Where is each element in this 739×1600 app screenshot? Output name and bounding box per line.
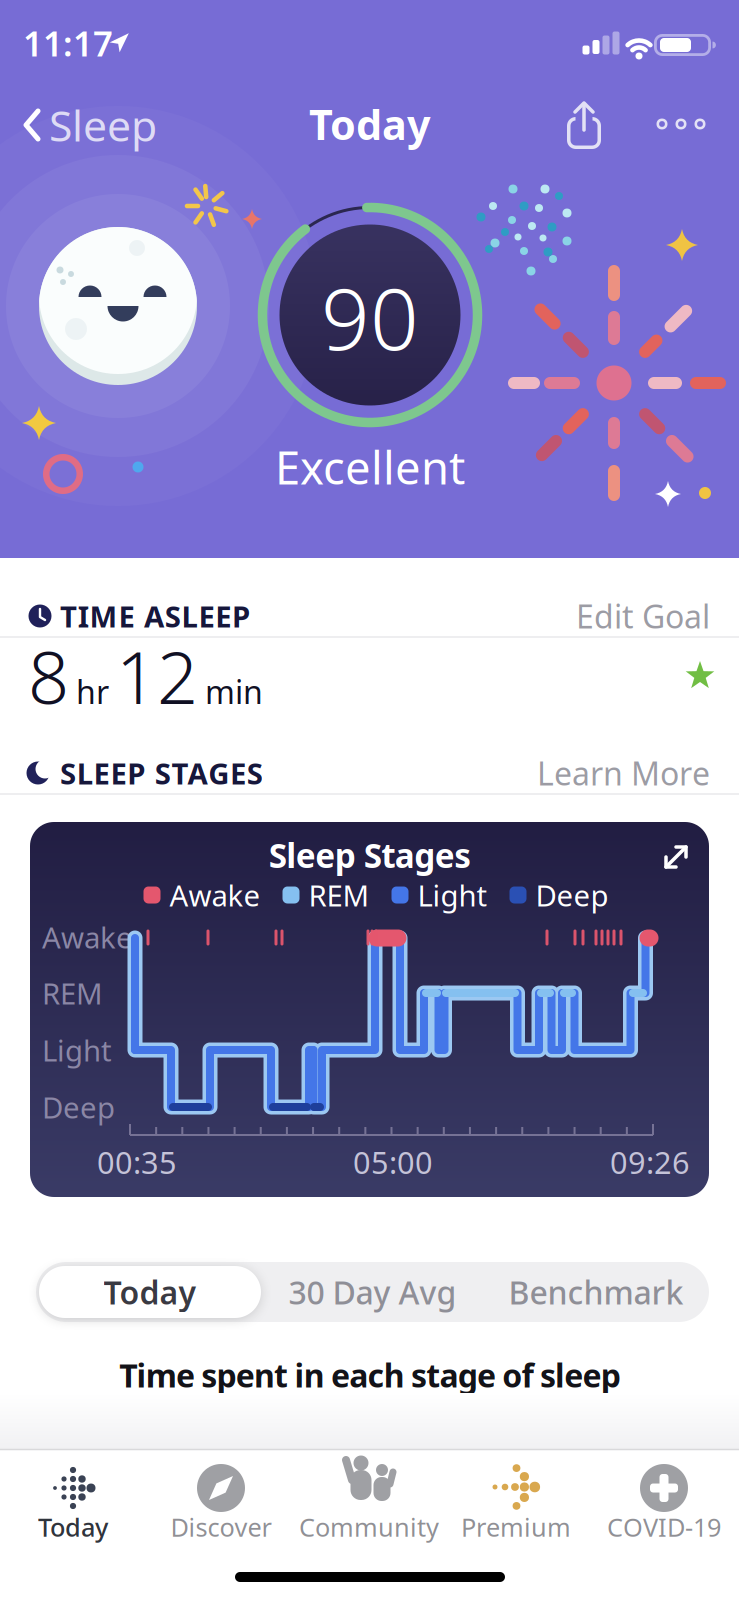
- staticText: 05:00: [353, 1142, 433, 1182]
- staticText: Deep: [42, 1087, 115, 1126]
- staticText: SLEEP STAGES: [60, 753, 263, 792]
- staticText: hr: [76, 670, 109, 713]
- staticText: Sleep: [49, 97, 157, 153]
- staticText: 90: [321, 260, 419, 374]
- staticText: Learn More: [537, 752, 710, 794]
- staticText: COVID-19: [607, 1510, 721, 1544]
- staticText: Edit Goal: [576, 595, 710, 637]
- button[interactable]: 30 Day Avg: [260, 1262, 484, 1322]
- staticText: Today: [38, 1510, 108, 1544]
- staticText: Light: [417, 875, 487, 914]
- staticText: 09:26: [610, 1142, 690, 1182]
- button[interactable]: Premium: [464, 1452, 568, 1542]
- staticText: Today: [309, 97, 431, 151]
- button[interactable]: More: [656, 112, 706, 136]
- staticText: Light: [42, 1030, 112, 1069]
- staticText: 12: [116, 628, 198, 724]
- button[interactable]: Learn More: [490, 751, 710, 795]
- staticText: Deep: [535, 875, 608, 914]
- staticText: 11:17: [23, 20, 113, 66]
- staticText: Awake: [42, 917, 133, 956]
- staticText: Excellent: [275, 437, 465, 497]
- button[interactable]: Community: [305, 1452, 433, 1542]
- staticText: min: [205, 670, 263, 713]
- staticText: Community: [299, 1510, 439, 1544]
- staticText: 30 Day Avg: [288, 1271, 456, 1313]
- staticText: Discover: [170, 1510, 271, 1544]
- staticText: Premium: [461, 1510, 571, 1544]
- staticText: 8: [28, 628, 69, 724]
- button[interactable]: Share: [562, 102, 606, 150]
- staticText: Today: [103, 1271, 196, 1313]
- button[interactable]: Today: [37, 1452, 109, 1542]
- staticText: REM: [308, 875, 369, 914]
- staticText: Sleep Stages: [269, 833, 471, 877]
- button[interactable]: Expand: [664, 845, 688, 869]
- button[interactable]: Edit Goal: [490, 594, 710, 638]
- button[interactable]: Benchmark: [484, 1262, 708, 1322]
- staticText: TIME ASLEEP: [60, 596, 250, 635]
- staticText: Benchmark: [508, 1271, 683, 1313]
- staticText: Awake: [169, 875, 260, 914]
- button[interactable]: Back: [24, 98, 224, 152]
- button[interactable]: Today: [38, 1262, 262, 1322]
- staticText: REM: [42, 973, 103, 1012]
- staticText: Time spent in each stage of sleep: [119, 1354, 621, 1396]
- staticText: 00:35: [97, 1142, 177, 1182]
- button[interactable]: COVID-19: [602, 1452, 726, 1542]
- button[interactable]: Discover: [161, 1452, 281, 1542]
